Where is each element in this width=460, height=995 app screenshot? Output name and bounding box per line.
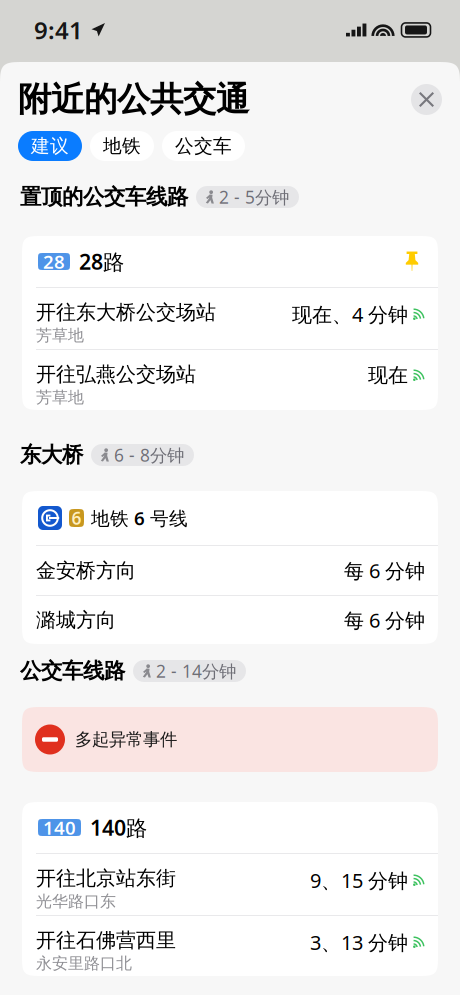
staticText: 2 - 14分钟 (156, 659, 236, 682)
button[interactable]: 开往北京站东街 (22, 854, 438, 915)
staticText: 金安桥方向 (36, 558, 136, 583)
staticText: 每 6 分钟 (344, 557, 425, 584)
staticText: 开往石佛营西里 (36, 928, 176, 953)
button[interactable]: 多起异常事件 (0, 707, 460, 772)
staticText: 开往北京站东街 (36, 866, 176, 891)
staticText: 6 - 8分钟 (114, 443, 184, 466)
button[interactable]: 建议 (18, 131, 82, 161)
button[interactable]: 开往石佛营西里 (22, 916, 438, 976)
staticText: 芳草地 (36, 326, 84, 345)
staticText: 潞城方向 (36, 608, 116, 632)
staticText: 开往弘燕公交场站 (36, 362, 196, 387)
button[interactable]: 6 (22, 491, 438, 545)
staticText: 多起异常事件 (75, 729, 177, 750)
staticText: 地铁 6 号线 (91, 506, 188, 530)
staticText: 140路 (90, 813, 147, 842)
staticText: 每 6 分钟 (344, 607, 425, 633)
staticText: 公交车线路 (20, 658, 125, 684)
staticText: 现在、4 分钟 (292, 301, 408, 328)
staticText: 开往东大桥公交场站 (36, 300, 216, 325)
staticText: 9:41 (34, 14, 83, 46)
staticText: 公交车 (175, 134, 232, 157)
button[interactable]: 公交车 (162, 131, 245, 161)
staticText: 地铁 (103, 134, 141, 157)
staticText: 东大桥 (20, 442, 83, 468)
staticText: 28路 (79, 247, 124, 276)
staticText: 28 (43, 249, 65, 274)
button[interactable]: 关闭 (411, 84, 442, 115)
staticText: 芳草地 (36, 388, 84, 407)
staticText: 2 - 5分钟 (219, 185, 289, 208)
staticText: 永安里路口北 (36, 954, 132, 973)
button[interactable]: 开往弘燕公交场站 (22, 350, 438, 410)
staticText: 光华路口东 (36, 892, 116, 911)
staticText: 3、13 分钟 (310, 929, 408, 956)
button[interactable]: 开往东大桥公交场站 (22, 288, 438, 349)
button[interactable]: 28 (22, 236, 438, 287)
button[interactable]: 140 (22, 802, 438, 853)
button[interactable]: 金安桥方向 (22, 546, 438, 595)
staticText: 6 (71, 506, 81, 529)
staticText: 建议 (31, 134, 69, 157)
button[interactable]: 潞城方向 (22, 596, 438, 644)
staticText: 附近的公共交通 (18, 79, 249, 120)
staticText: 9、15 分钟 (310, 867, 408, 894)
staticText: 置顶的公交车线路 (20, 184, 188, 210)
button[interactable]: 地铁 (90, 131, 154, 161)
staticText: 140 (43, 815, 76, 840)
staticText: 现在 (368, 363, 408, 388)
